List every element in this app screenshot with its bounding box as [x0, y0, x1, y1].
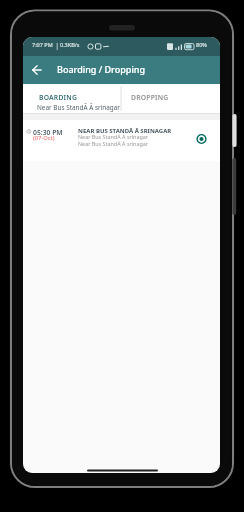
staticText: Near Bus StandÂ Â srinagar [78, 140, 148, 147]
staticText: Near Bus StandÂ Â srinagar [78, 133, 148, 140]
staticText: Near Bus StandÂ Â srinagar [37, 103, 120, 112]
staticText: 80% [196, 41, 207, 48]
staticText: 7:07 PM [32, 41, 53, 48]
button[interactable] [29, 61, 46, 78]
staticText: Boarding / Dropping [57, 63, 146, 75]
staticText: 0.3KB/s [60, 41, 80, 48]
button[interactable]: 05:30 PM [23, 120, 220, 161]
button[interactable]: DROPPING [121, 84, 220, 113]
staticText: (07-Oct) [33, 134, 55, 142]
button[interactable]: BOARDING [23, 84, 121, 113]
staticText: 05:30 PM [33, 128, 63, 137]
staticText: BOARDING [39, 93, 78, 102]
staticText: NEAR BUS STANDÂ Â SRINAGAR [78, 127, 172, 135]
staticText: DROPPING [131, 93, 169, 102]
